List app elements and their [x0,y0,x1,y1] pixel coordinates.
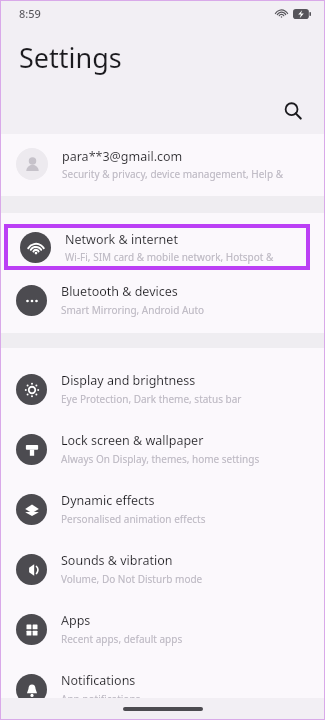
button[interactable]: Network & internet [8,228,306,266]
staticText: Notifications [61,672,136,689]
button[interactable]: Search [275,93,311,129]
button[interactable]: Apps [0,599,325,659]
button[interactable]: Lock screen & wallpaper [0,419,325,479]
staticText: Apps [61,612,91,629]
staticText: App notifications [61,692,141,706]
button[interactable]: Display and brightness [0,359,325,419]
button[interactable]: Sounds & vibration [0,539,325,599]
staticText: Bluetooth & devices [61,283,178,300]
staticText: Wi-Fi, SIM card & mobile network, Hotspo… [65,250,306,264]
staticText: Settings [19,39,122,76]
staticText: Network & internet [65,231,178,248]
button[interactable]: Bluetooth & devices [0,270,325,330]
staticText: Dynamic effects [61,492,155,509]
staticText: Volume, Do Not Disturb mode [61,572,203,586]
staticText: Display and brightness [61,372,196,389]
button[interactable]: para**3@gmail.com [0,138,325,190]
staticText: Eye Protection, Dark theme, status bar [61,392,242,406]
staticText: Recent apps, default apps [61,632,183,646]
staticText: Security & privacy, device management, H… [62,167,309,181]
staticText: Lock screen & wallpaper [61,432,204,449]
button[interactable]: Notifications [0,659,325,719]
staticText: para**3@gmail.com [62,148,183,165]
staticText: Always On Display, themes, home settings [61,452,260,466]
staticText: 8:59 [19,6,41,21]
staticText: Sounds & vibration [61,552,173,569]
staticText: Personalised animation effects [61,512,206,526]
staticText: Smart Mirroring, Android Auto [61,303,205,317]
button[interactable]: Dynamic effects [0,479,325,539]
